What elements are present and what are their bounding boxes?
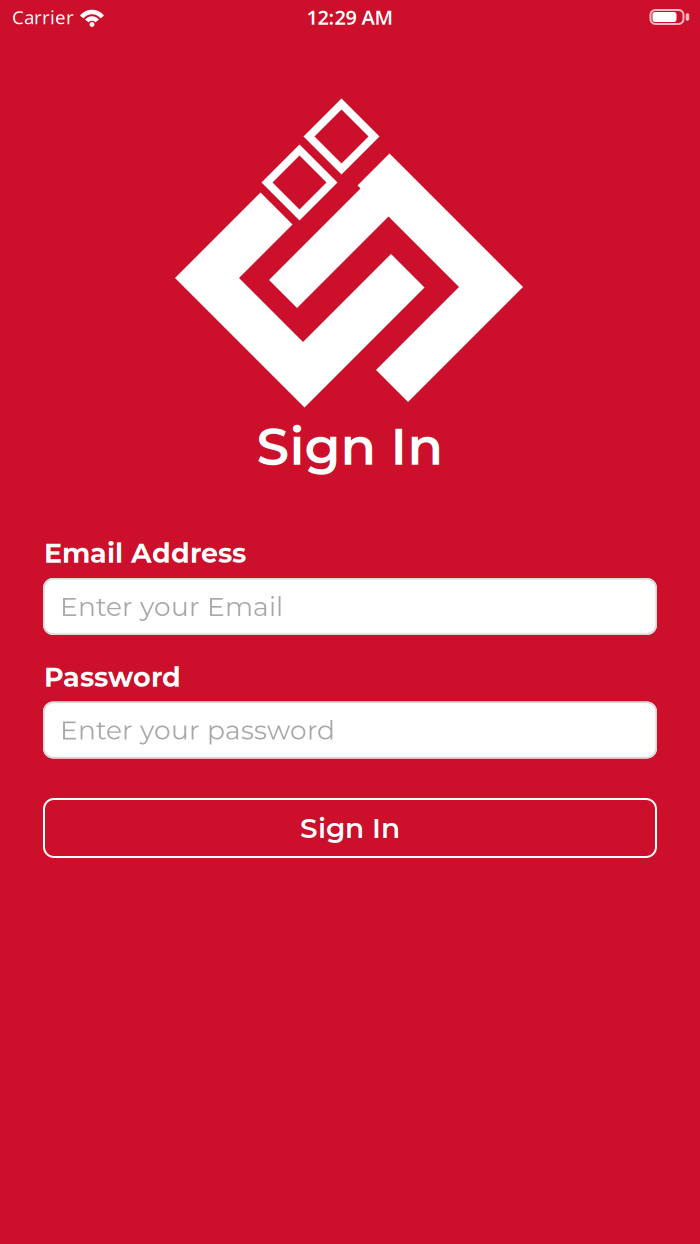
staticText: Carrier [12,5,74,29]
button[interactable]: Enter your password [43,701,657,758]
staticText: Enter your password [60,714,335,746]
button[interactable]: Enter your Email [43,578,657,635]
staticText: Sign In [300,811,400,845]
button[interactable]: Sign In [43,798,657,858]
staticText: Email Address [44,536,246,569]
staticText: 12:29 AM [306,4,393,30]
staticText: Password [44,660,181,693]
staticText: Enter your Email [60,590,283,623]
staticText: Sign In [256,414,443,478]
